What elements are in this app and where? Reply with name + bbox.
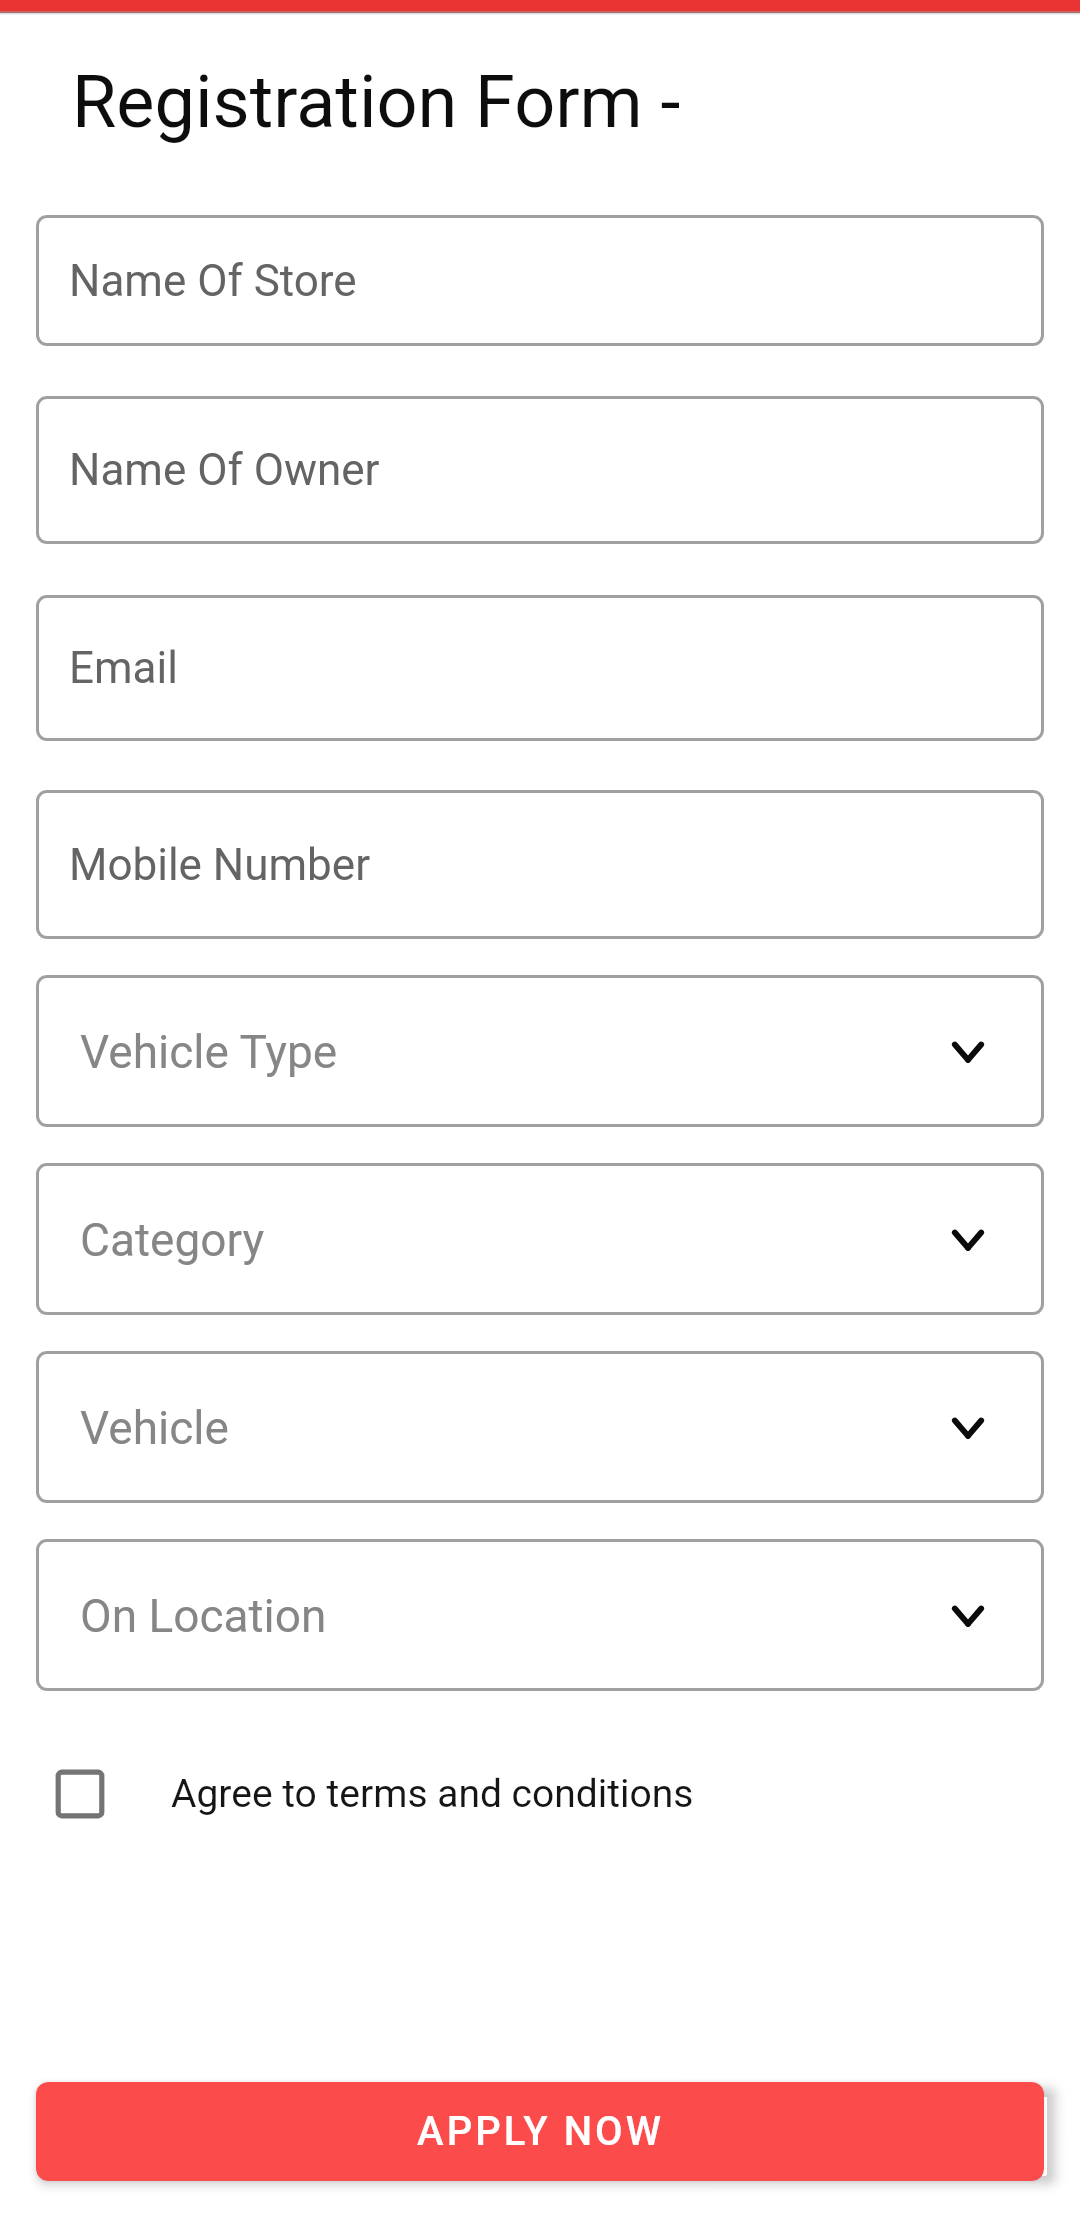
staticText: On Location [80, 1589, 327, 1643]
button[interactable]: Agree to terms and conditions [46, 1760, 694, 1828]
other: Open Vehicle dropdown [950, 1414, 986, 1440]
staticText: Category [80, 1213, 265, 1267]
button[interactable]: On Location [36, 1539, 1044, 1691]
button[interactable]: Vehicle [36, 1351, 1044, 1503]
other: Agree to terms and conditions [46, 1760, 114, 1828]
button[interactable]: Category [36, 1163, 1044, 1315]
staticText: Name Of Store [69, 255, 357, 307]
button[interactable]: Name Of Store [36, 215, 1044, 346]
button[interactable]: Email [36, 595, 1044, 741]
staticText: Registration Form - [72, 60, 681, 144]
button[interactable]: Vehicle Type [36, 975, 1044, 1127]
staticText: Vehicle [80, 1401, 229, 1455]
button[interactable]: Mobile Number [36, 790, 1044, 939]
staticText: Mobile Number [69, 839, 371, 891]
staticText: APPLY NOW [417, 2108, 664, 2155]
staticText: Agree to terms and conditions [171, 1771, 694, 1817]
other: Open Vehicle Type dropdown [950, 1038, 986, 1064]
staticText: Name Of Owner [69, 444, 380, 496]
button[interactable]: Name Of Owner [36, 396, 1044, 544]
button[interactable]: APPLY NOW [36, 2082, 1044, 2181]
other: Open Category dropdown [950, 1226, 986, 1252]
staticText: Email [69, 642, 178, 694]
other: Open On Location dropdown [950, 1602, 986, 1628]
staticText: Vehicle Type [80, 1025, 338, 1079]
